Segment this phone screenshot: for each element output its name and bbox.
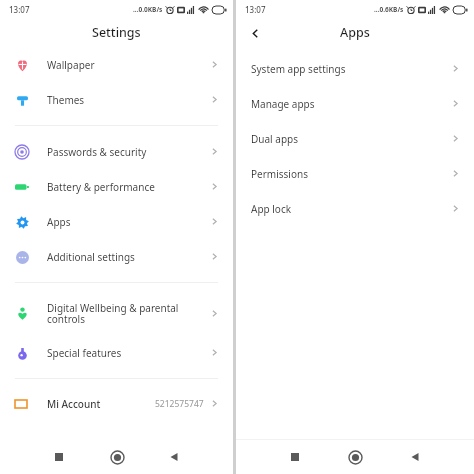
button[interactable]: App lock	[236, 191, 474, 226]
staticText: ...0.0KB/s	[133, 5, 163, 14]
staticText: Manage apps	[251, 97, 451, 111]
staticText: System app settings	[251, 62, 451, 76]
button[interactable]: Back	[161, 444, 187, 470]
staticText: 13:07	[9, 4, 30, 15]
staticText: Wallpaper	[47, 58, 210, 72]
button[interactable]: Additional settings	[0, 239, 233, 274]
staticText: Battery & performance	[47, 180, 210, 194]
button[interactable]: Passwords & security	[0, 134, 233, 169]
button[interactable]: Recents	[46, 444, 72, 470]
staticText: Apps	[47, 215, 210, 229]
staticText: ...0.6KB/s	[374, 5, 404, 14]
button[interactable]: Mi Account	[0, 387, 233, 420]
staticText: 13:07	[245, 4, 266, 15]
staticText: Apps	[340, 24, 370, 41]
button[interactable]: Manage apps	[236, 86, 474, 121]
staticText: Permissions	[251, 167, 451, 181]
button[interactable]: Back	[244, 22, 266, 44]
staticText: Passwords & security	[47, 145, 210, 159]
button[interactable]: Themes	[0, 82, 233, 117]
staticText: Special features	[47, 346, 210, 360]
staticText: Mi Account	[47, 397, 155, 411]
button[interactable]: Apps	[0, 204, 233, 239]
staticText: Dual apps	[251, 132, 451, 146]
staticText: Themes	[47, 93, 210, 107]
button[interactable]: Wallpaper	[0, 47, 233, 82]
button[interactable]: Permissions	[236, 156, 474, 191]
staticText: 5212575747	[155, 398, 204, 410]
button[interactable]: Special features	[0, 335, 233, 370]
staticText: Settings	[92, 24, 141, 41]
staticText: Additional settings	[47, 250, 210, 264]
button[interactable]: Digital Wellbeing & parental controls	[0, 291, 233, 335]
staticText: Digital Wellbeing & parental controls	[47, 301, 210, 326]
button[interactable]: Battery & performance	[0, 169, 233, 204]
button[interactable]: Recents	[282, 444, 308, 470]
button[interactable]: Back	[402, 444, 428, 470]
button[interactable]: Home	[104, 444, 130, 470]
button[interactable]: Home	[342, 444, 368, 470]
button[interactable]: System app settings	[236, 51, 474, 86]
staticText: App lock	[251, 202, 451, 216]
button[interactable]: Dual apps	[236, 121, 474, 156]
